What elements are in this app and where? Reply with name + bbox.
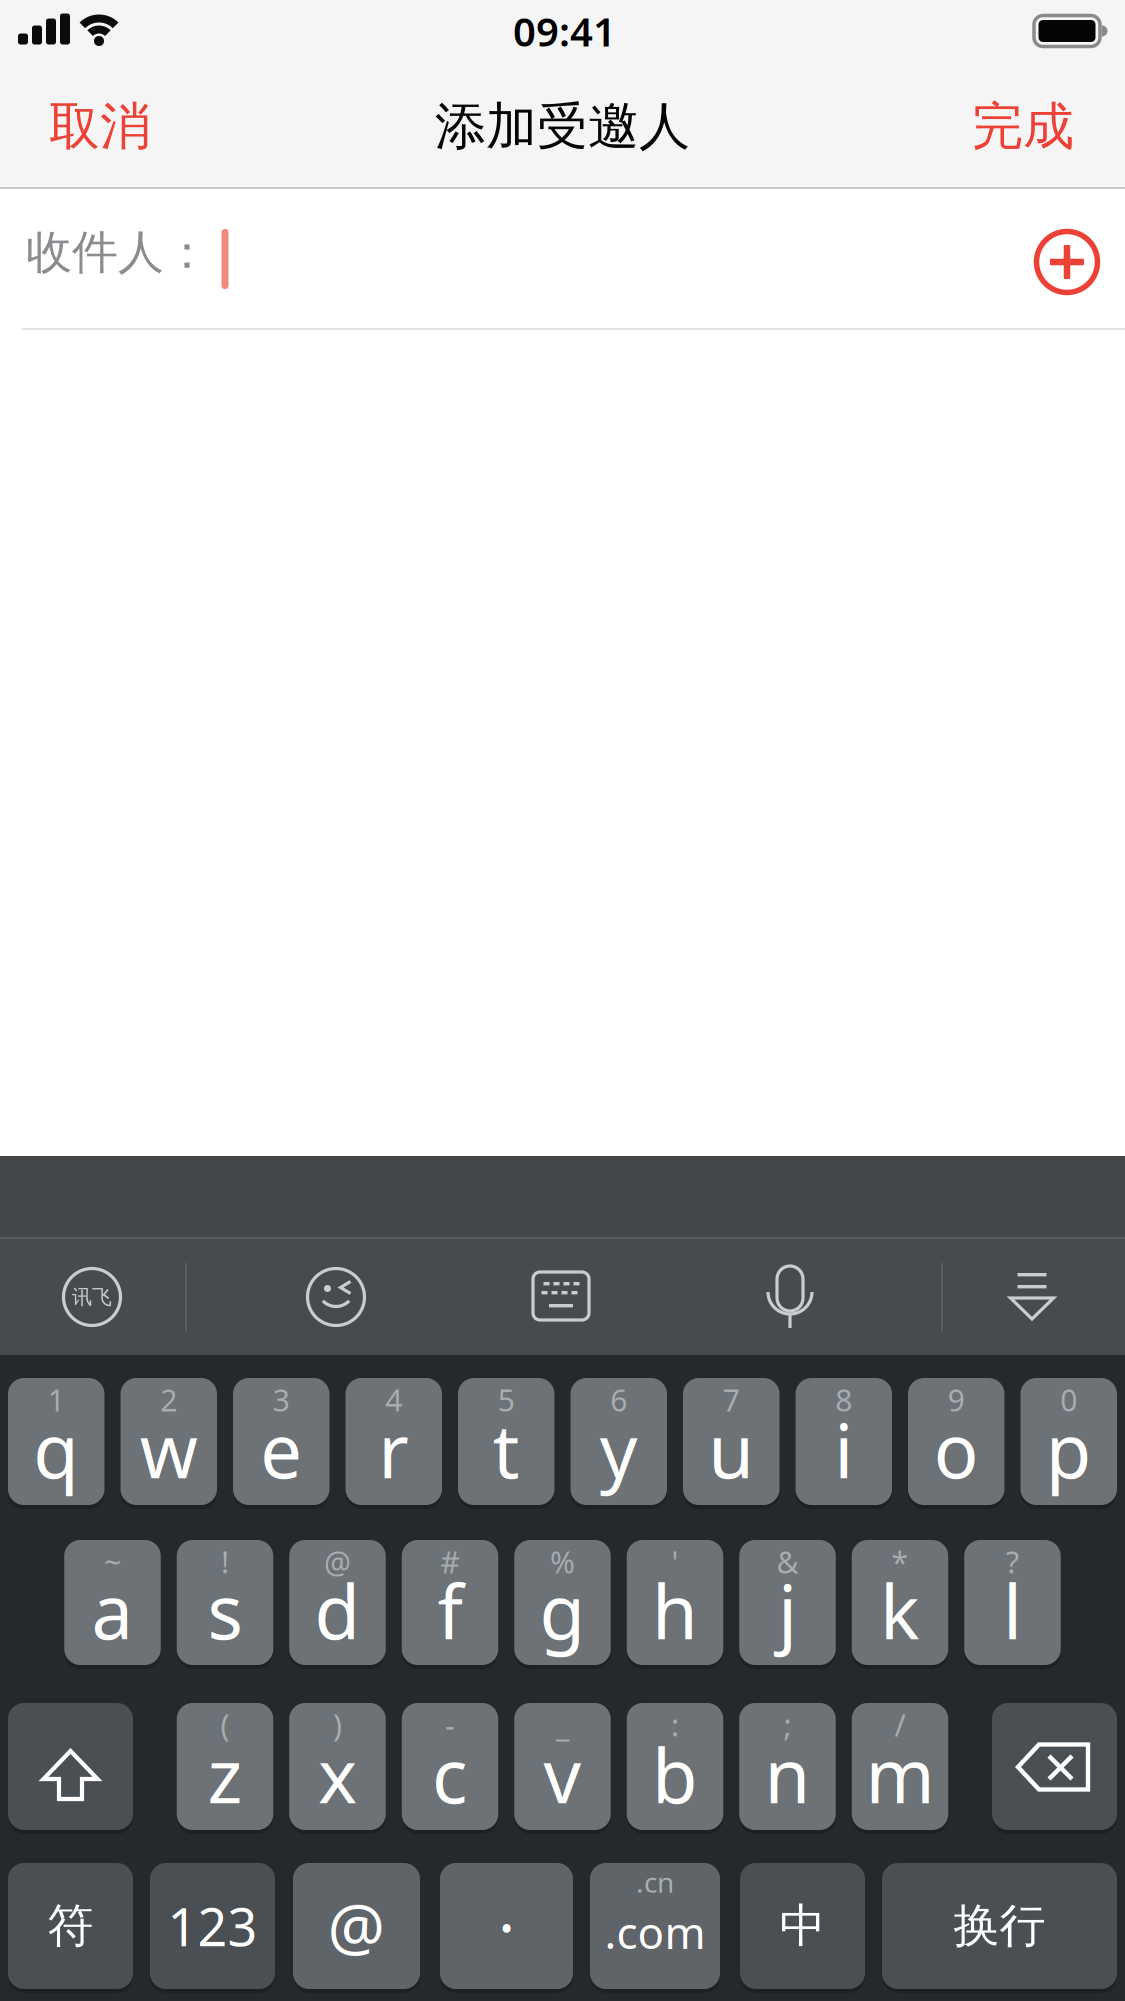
button[interactable]: w <box>120 1378 217 1505</box>
button[interactable]: 讯飞输入法 <box>17 1239 167 1355</box>
staticText: a <box>91 1561 133 1660</box>
button[interactable]: d <box>289 1540 386 1665</box>
button[interactable]: o <box>908 1378 1004 1505</box>
staticText: 9 <box>948 1380 965 1420</box>
staticText: 收件人： <box>26 224 210 281</box>
button[interactable]: · <box>440 1863 573 1989</box>
button[interactable]: i <box>795 1378 892 1505</box>
staticText: 7 <box>723 1380 740 1420</box>
staticText: g <box>539 1561 585 1660</box>
button[interactable]: 删除 <box>992 1703 1117 1830</box>
staticText: v <box>543 1725 581 1824</box>
staticText: 123 <box>167 1891 257 1961</box>
button[interactable]: 中 <box>740 1863 865 1989</box>
staticText: 3 <box>273 1380 290 1420</box>
button[interactable]: j <box>739 1540 836 1665</box>
button[interactable]: u <box>683 1378 779 1505</box>
button[interactable]: h <box>627 1540 723 1665</box>
staticText: r <box>378 1400 409 1499</box>
button[interactable]: .cn <box>590 1863 720 1989</box>
staticText: .cn <box>636 1863 674 1901</box>
button[interactable]: k <box>852 1540 948 1665</box>
staticText: 完成 <box>972 95 1074 158</box>
staticText: · <box>498 1883 515 1968</box>
button[interactable]: y <box>570 1378 667 1505</box>
staticText: z <box>207 1725 242 1824</box>
staticText: 8 <box>835 1380 852 1420</box>
staticText: h <box>652 1561 698 1660</box>
staticText: 中 <box>779 1898 825 1954</box>
button[interactable]: 完成 <box>972 95 1125 158</box>
staticText: @ <box>327 1883 385 1968</box>
staticText: w <box>140 1400 198 1499</box>
staticText: / <box>894 1705 905 1745</box>
staticText: 取消 <box>49 95 151 158</box>
button[interactable]: v <box>514 1703 611 1830</box>
button[interactable]: g <box>514 1540 611 1665</box>
staticText: ! <box>221 1542 229 1582</box>
staticText: ; <box>783 1705 791 1745</box>
button[interactable]: 键盘设置 <box>481 1238 641 1354</box>
button[interactable]: b <box>627 1703 723 1830</box>
staticText: o <box>934 1400 979 1499</box>
staticText: * <box>891 1542 908 1582</box>
staticText: _ <box>556 1705 569 1745</box>
button[interactable]: p <box>1020 1378 1117 1505</box>
button[interactable]: 表情 <box>256 1239 416 1355</box>
staticText: @ <box>324 1542 351 1582</box>
staticText: # <box>440 1542 459 1582</box>
staticText: q <box>33 1400 79 1499</box>
staticText: d <box>314 1561 360 1660</box>
staticText: ~ <box>104 1542 121 1582</box>
staticText: 0 <box>1060 1380 1077 1420</box>
staticText: .com <box>604 1903 705 1961</box>
staticText: 1 <box>48 1380 65 1420</box>
button[interactable]: @ <box>293 1863 420 1989</box>
button[interactable]: m <box>852 1703 948 1830</box>
button[interactable]: 123 <box>150 1863 275 1989</box>
button[interactable]: Shift <box>8 1703 133 1830</box>
staticText: p <box>1046 1400 1092 1499</box>
button[interactable]: 收起键盘 <box>957 1239 1107 1355</box>
button[interactable]: s <box>177 1540 273 1665</box>
button[interactable]: t <box>458 1378 554 1505</box>
button[interactable]: 语音输入 <box>710 1239 870 1355</box>
staticText: b <box>652 1725 698 1824</box>
staticText: u <box>708 1400 754 1499</box>
staticText: 6 <box>610 1380 627 1420</box>
staticText: s <box>207 1561 242 1660</box>
button[interactable]: 符 <box>8 1863 133 1989</box>
button[interactable]: e <box>233 1378 329 1505</box>
staticText: ' <box>671 1542 678 1582</box>
button[interactable]: 换行 <box>882 1863 1117 1989</box>
button[interactable]: n <box>739 1703 836 1830</box>
button[interactable]: c <box>402 1703 498 1830</box>
staticText: ? <box>1006 1542 1019 1582</box>
button[interactable]: 取消 <box>0 95 151 158</box>
button[interactable]: z <box>177 1703 273 1830</box>
staticText: f <box>437 1561 462 1660</box>
staticText: 2 <box>160 1380 177 1420</box>
staticText: ( <box>220 1705 229 1745</box>
staticText: ) <box>333 1705 342 1745</box>
staticText: 添加受邀人 <box>435 95 690 158</box>
staticText: - <box>445 1705 455 1745</box>
button[interactable]: f <box>402 1540 498 1665</box>
staticText: 换行 <box>953 1898 1045 1954</box>
button[interactable]: x <box>289 1703 386 1830</box>
staticText: l <box>1003 1561 1022 1660</box>
button[interactable]: q <box>8 1378 104 1505</box>
button[interactable]: r <box>345 1378 442 1505</box>
staticText: m <box>865 1725 934 1824</box>
button[interactable]: 收件人输入框 <box>0 189 1125 328</box>
staticText: t <box>493 1400 520 1499</box>
staticText: 讯飞 <box>72 1285 112 1309</box>
staticText: y <box>600 1400 638 1499</box>
staticText: 09:41 <box>513 4 616 57</box>
button[interactable]: a <box>64 1540 161 1665</box>
staticText: 4 <box>385 1380 402 1420</box>
staticText: c <box>432 1725 468 1824</box>
button[interactable]: 添加联系人 <box>1034 222 1125 295</box>
button[interactable]: l <box>964 1540 1061 1665</box>
staticText: e <box>260 1400 302 1499</box>
